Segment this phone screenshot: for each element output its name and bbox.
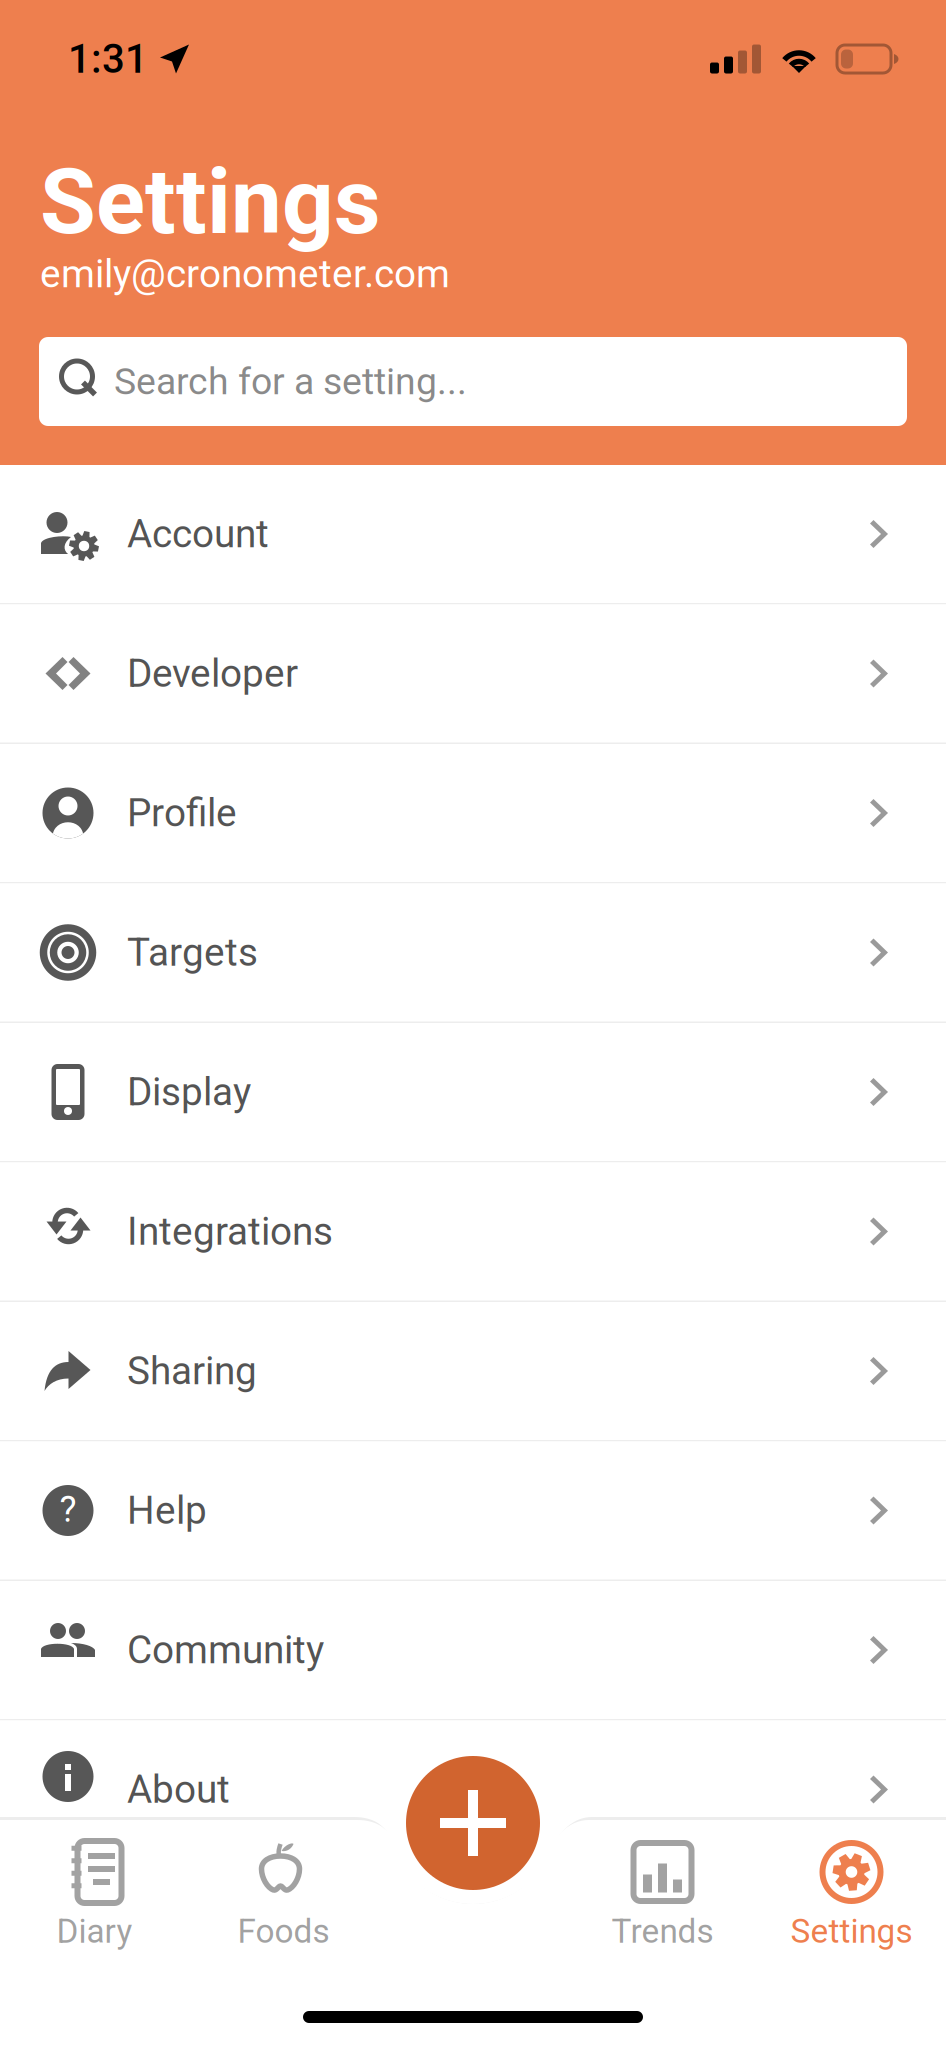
button[interactable]: Add bbox=[406, 1756, 540, 1890]
button[interactable]: Account bbox=[0, 465, 946, 603]
staticText: Sharing bbox=[127, 1348, 257, 1394]
button[interactable]: Profile bbox=[0, 744, 946, 882]
button[interactable]: Diary bbox=[0, 1837, 189, 1951]
staticText: Settings bbox=[790, 1912, 912, 1951]
staticText: About bbox=[127, 1767, 230, 1812]
staticText: Profile bbox=[127, 790, 237, 836]
staticText: 1:31 bbox=[68, 36, 148, 82]
button[interactable]: About bbox=[0, 1720, 946, 1858]
staticText: Search for a setting... bbox=[114, 360, 467, 403]
button[interactable]: Targets bbox=[0, 883, 946, 1021]
button[interactable]: Search for a setting... bbox=[39, 337, 907, 426]
staticText: ? bbox=[59, 1488, 76, 1531]
button[interactable]: Settings bbox=[757, 1837, 946, 1951]
button[interactable]: Display bbox=[0, 1023, 946, 1161]
staticText: Settings bbox=[40, 149, 381, 255]
button[interactable]: Community bbox=[0, 1581, 946, 1719]
staticText: Trends bbox=[611, 1912, 713, 1951]
button[interactable]: Foods bbox=[189, 1837, 378, 1951]
staticText: Help bbox=[127, 1488, 207, 1533]
staticText: emily@cronometer.com bbox=[40, 251, 450, 297]
button[interactable]: Integrations bbox=[0, 1162, 946, 1300]
staticText: Account bbox=[127, 511, 269, 557]
staticText: Display bbox=[127, 1069, 251, 1115]
staticText: Developer bbox=[127, 651, 298, 696]
staticText: Community bbox=[127, 1627, 324, 1673]
button[interactable]: Sharing bbox=[0, 1302, 946, 1440]
staticText: Foods bbox=[237, 1912, 329, 1951]
button[interactable]: ? bbox=[0, 1441, 946, 1579]
staticText: Integrations bbox=[127, 1209, 333, 1254]
button[interactable]: Trends bbox=[568, 1837, 757, 1951]
staticText: Diary bbox=[56, 1912, 132, 1951]
staticText: Targets bbox=[127, 930, 258, 975]
button[interactable]: Developer bbox=[0, 604, 946, 742]
